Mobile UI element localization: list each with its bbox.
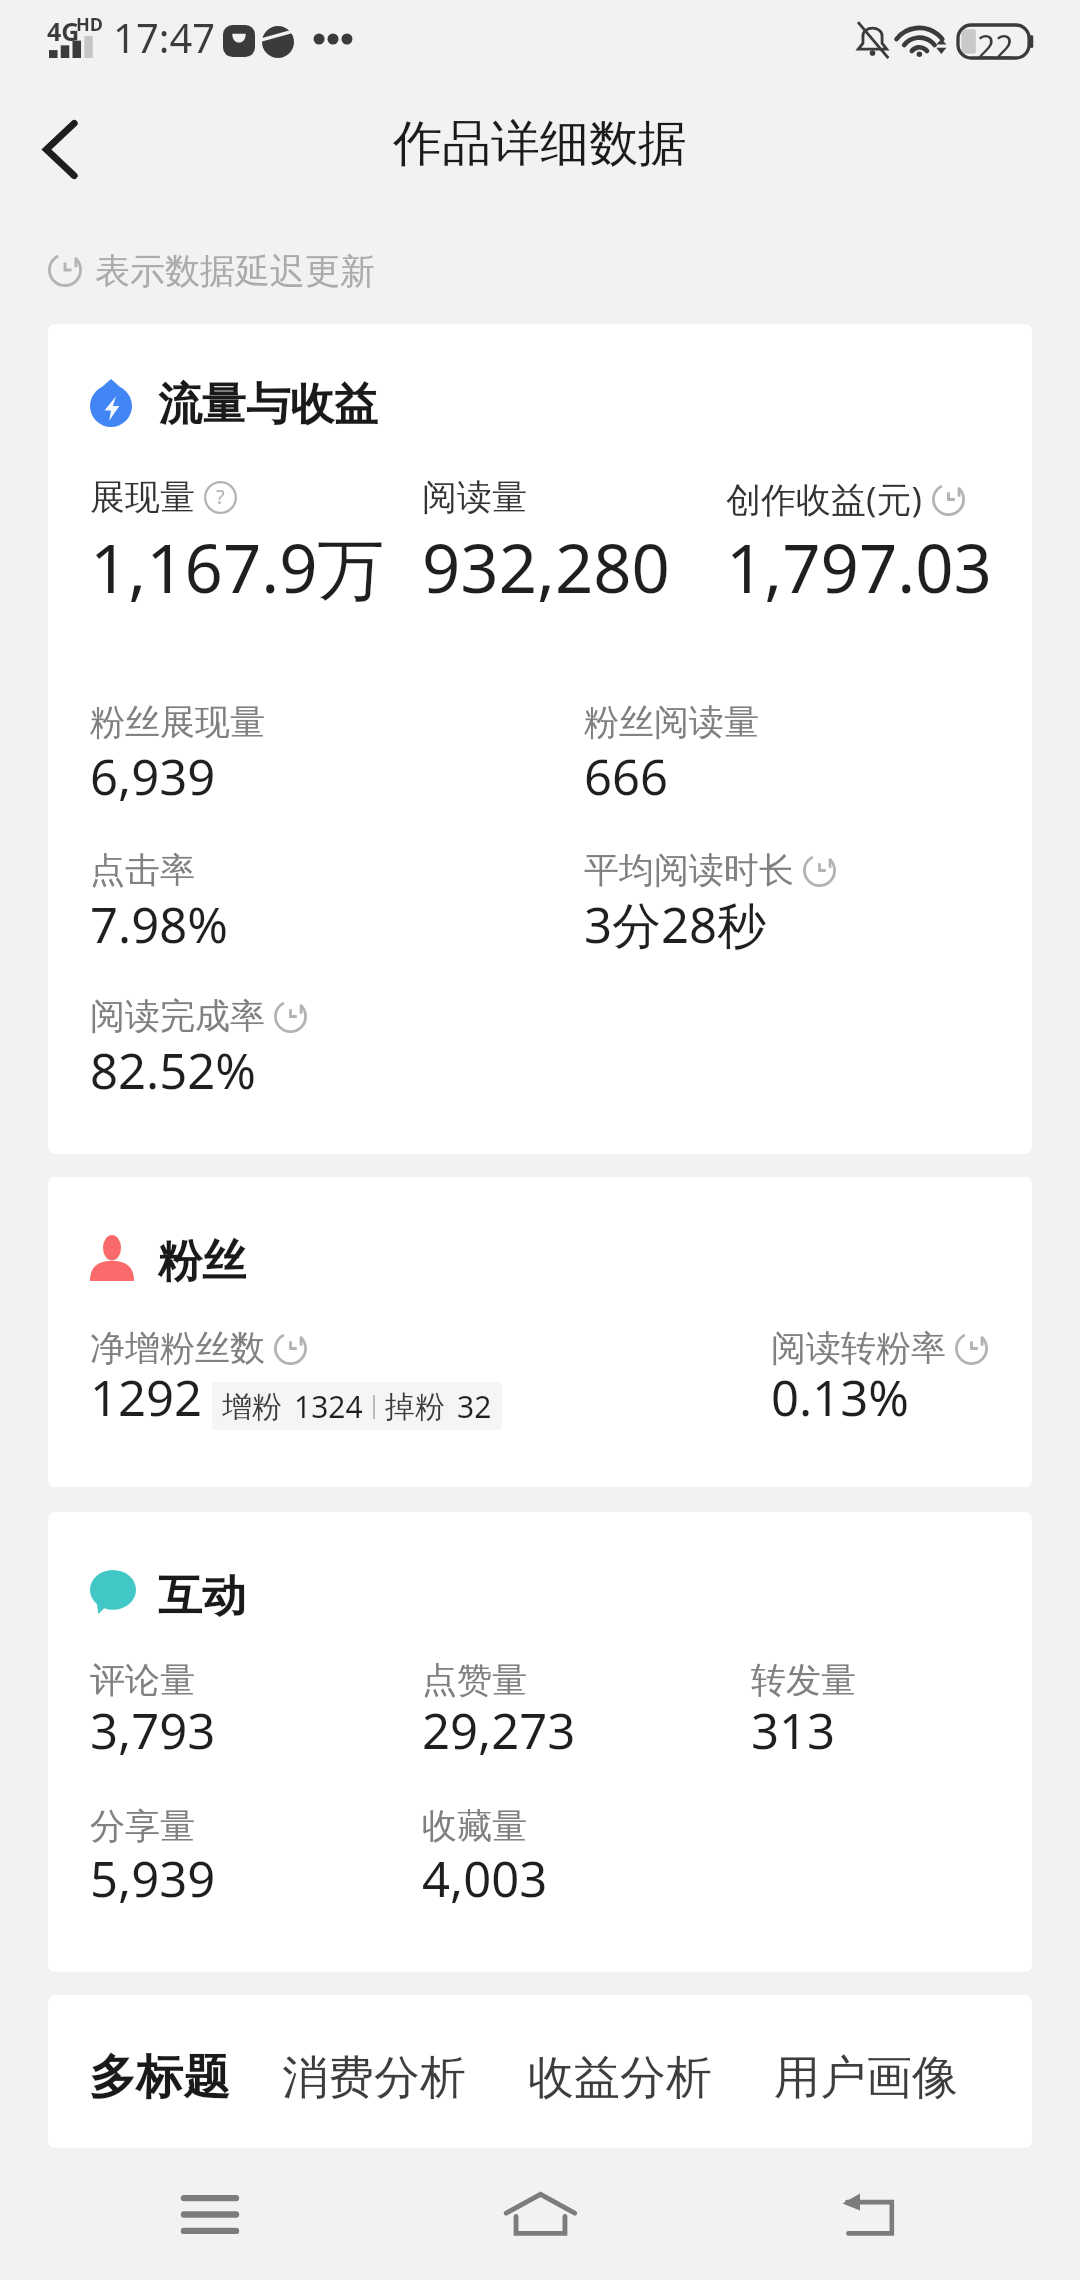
staticText: 932,280 [422, 521, 670, 612]
staticText: 29,273 [422, 1697, 576, 1764]
staticText: 净增粉丝数 [90, 1326, 265, 1370]
staticText: 展现量 [90, 475, 195, 519]
staticText: 消费分析 [282, 2049, 466, 2107]
staticText: 点击率 [90, 848, 195, 892]
staticText: 1292 [90, 1364, 203, 1431]
staticText: 评论量 [90, 1658, 195, 1702]
staticText: 粉丝展现量 [90, 700, 265, 744]
staticText: 666 [584, 743, 669, 810]
button[interactable]: Back [22, 111, 98, 187]
staticText: 平均阅读时长 [584, 848, 794, 892]
staticText: 分享量 [90, 1804, 195, 1848]
staticText: 6,939 [90, 743, 216, 810]
button[interactable]: 多标题 [89, 1995, 230, 2122]
staticText: 转发量 [751, 1658, 856, 1702]
staticText: 收藏量 [422, 1804, 527, 1848]
staticText: 3分28秒 [584, 891, 767, 958]
staticText: 多标题 [89, 2048, 230, 2107]
button[interactable]: Home [460, 2152, 620, 2277]
staticText: 1,797.03 [726, 521, 992, 612]
staticText: 粉丝 [158, 1234, 246, 1289]
staticText: 阅读完成率 [90, 994, 265, 1038]
staticText: 创作收益(元) [726, 475, 923, 523]
button[interactable]: Recents [130, 2152, 290, 2277]
staticText: 3,793 [90, 1697, 216, 1764]
button[interactable]: 消费分析 [282, 1996, 466, 2122]
button[interactable]: Back [788, 2152, 948, 2277]
staticText: 掉粉 [385, 1388, 445, 1426]
staticText: 粉丝阅读量 [584, 700, 759, 744]
staticText: 作品详细数据 [393, 113, 687, 175]
staticText: 32 [457, 1386, 492, 1427]
staticText: 点赞量 [422, 1658, 527, 1702]
button[interactable]: 收益分析 [528, 1996, 712, 2122]
staticText: 5,939 [90, 1845, 216, 1912]
staticText: 增粉 [222, 1388, 282, 1426]
staticText: ? [216, 483, 225, 510]
staticText: 22 [977, 25, 1014, 69]
staticText: 313 [751, 1697, 836, 1764]
staticText: 4,003 [422, 1845, 548, 1912]
staticText: 0.13% [771, 1364, 909, 1431]
staticText: 1,167.9万 [90, 521, 385, 613]
staticText: 表示数据延迟更新 [95, 249, 375, 293]
staticText: 流量与收益 [158, 377, 378, 432]
staticText: 互动 [158, 1569, 246, 1624]
button[interactable]: 用户画像 [774, 1996, 958, 2122]
staticText: 收益分析 [528, 2049, 712, 2107]
staticText: 阅读量 [422, 475, 527, 519]
staticText: 1324 [294, 1386, 363, 1427]
staticText: HD [76, 12, 103, 37]
staticText: 用户画像 [774, 2049, 958, 2107]
staticText: 4G [47, 14, 80, 48]
staticText: 阅读转粉率 [771, 1326, 946, 1370]
staticText: 7.98% [90, 891, 228, 958]
staticText: 17:47 [113, 10, 216, 64]
staticText: 82.52% [90, 1037, 256, 1104]
